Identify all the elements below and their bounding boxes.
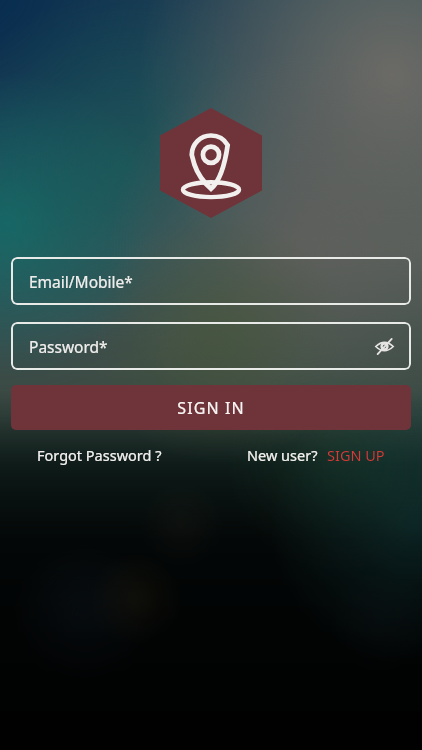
button[interactable]: Forgot Password ?	[33, 441, 166, 469]
button[interactable]: Password*	[11, 322, 411, 370]
staticText: New user?	[247, 445, 318, 465]
staticText: SIGN IN	[177, 397, 245, 419]
staticText: Email/Mobile*	[29, 271, 133, 292]
staticText: Password*	[29, 336, 108, 357]
button[interactable]: Email/Mobile*	[11, 257, 411, 305]
staticText: SIGN UP	[327, 445, 385, 465]
staticText: Forgot Password ?	[37, 445, 162, 465]
button[interactable]: SIGN UP	[318, 441, 422, 469]
button[interactable]: SIGN IN	[11, 385, 411, 430]
button[interactable]: Show password	[367, 329, 401, 363]
